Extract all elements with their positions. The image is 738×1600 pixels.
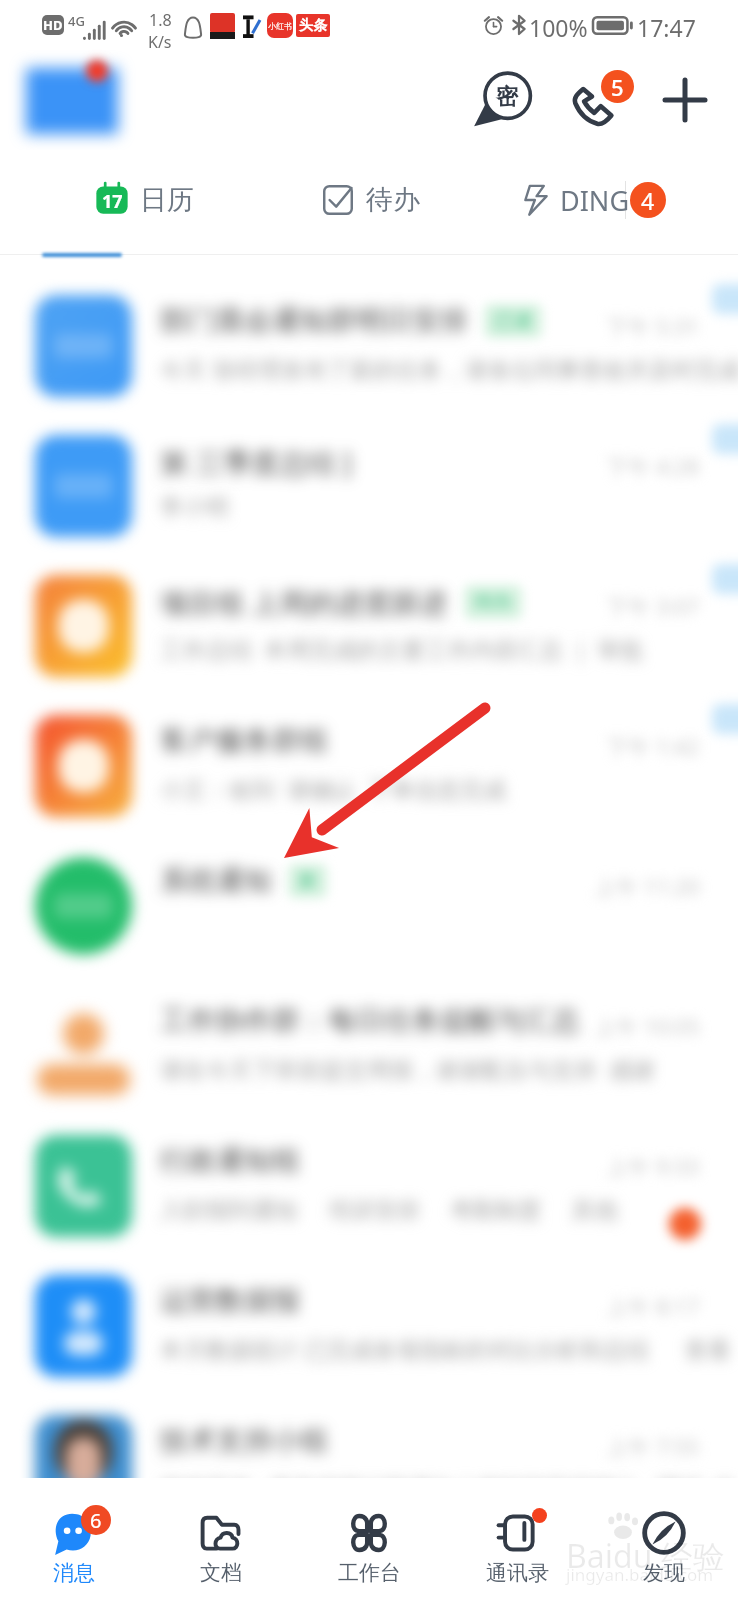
staticText: 下午 5:31	[606, 311, 700, 341]
staticText: jingyan.baidu.com	[566, 1563, 714, 1586]
staticText: 待办	[474, 590, 512, 614]
button[interactable]: Secret chat	[473, 67, 537, 131]
button[interactable]: 系统通知	[0, 836, 738, 976]
staticText: 下午 4:28	[606, 451, 700, 481]
staticText: 系统通知	[160, 863, 272, 898]
button[interactable]: 工作台	[296, 1478, 442, 1600]
staticText: 消息	[53, 1560, 95, 1586]
staticText: 今天 张经理发布了新的任务，请各位同事查收并及时完成	[160, 353, 738, 384]
staticText: 上午 8:17	[606, 1291, 700, 1321]
staticText: 日历	[140, 183, 194, 217]
staticText: Baidu 经验	[566, 1534, 725, 1578]
staticText: 工作协作群：每日任务提醒与汇总	[160, 1003, 580, 1038]
staticText: 通讯录	[486, 1560, 549, 1586]
staticText: 上午 10:05	[594, 1011, 700, 1041]
button[interactable]: Profile	[20, 58, 124, 142]
staticText: 17:47	[637, 12, 696, 43]
button[interactable]: 发现	[591, 1478, 737, 1600]
staticText: 下午 3:07	[606, 591, 700, 621]
button[interactable]: 技术支持小组	[0, 1396, 738, 1536]
staticText: 发现	[643, 1560, 685, 1586]
staticText: 李小明	[160, 493, 229, 522]
button[interactable]: 部门晨会通知群明日安排	[0, 276, 738, 416]
staticText: 5	[611, 72, 624, 102]
staticText: 上午 9:33	[606, 1151, 700, 1181]
staticText: 项目组 上周的进度跟进	[160, 583, 448, 621]
button[interactable]: 第 三季度总结 ]	[0, 416, 738, 556]
staticText: 1.8	[149, 9, 172, 31]
staticText: 已读	[494, 309, 532, 333]
staticText: 请在今天下班前提交周报，谢谢配合与支持 感谢	[160, 1053, 655, 1084]
button[interactable]: DING	[500, 150, 738, 250]
button[interactable]: Calls	[566, 68, 642, 132]
staticText: 新	[298, 869, 317, 893]
button[interactable]: 17	[40, 150, 256, 250]
staticText: DING	[560, 182, 630, 219]
staticText: 4	[641, 185, 655, 216]
staticText: 工作总结 本周完成的主要工作内容汇总 ｜ 审批	[160, 633, 644, 664]
staticText: 行政通知组	[160, 1143, 300, 1178]
staticText: 客户服务群组	[160, 723, 328, 758]
staticText: 密	[496, 83, 518, 111]
staticText: 入职报到通知 培训安排 考勤制度 其他	[160, 1193, 618, 1224]
staticText: 头条	[299, 17, 327, 35]
staticText: 100%	[529, 12, 588, 43]
staticText: 上午 7:55	[606, 1431, 700, 1461]
button[interactable]: 工作协作群：每日任务提醒与汇总	[0, 976, 738, 1116]
button[interactable]: 行政通知组	[0, 1116, 738, 1256]
button[interactable]: 客户服务群组	[0, 696, 738, 836]
staticText: 技术支持小组	[160, 1423, 328, 1458]
button[interactable]: 文档	[148, 1478, 294, 1600]
button[interactable]: 待办	[290, 150, 480, 250]
staticText: 上午 11:20	[594, 871, 700, 901]
button[interactable]: Add	[655, 70, 715, 130]
button[interactable]: 6	[1, 1478, 147, 1600]
staticText: K/s	[148, 31, 172, 53]
staticText: 工作台	[338, 1560, 401, 1586]
staticText: HD	[43, 16, 63, 34]
button[interactable]: 项目组 上周的进度跟进	[0, 556, 738, 696]
staticText: 17	[102, 189, 123, 214]
staticText: 4G	[68, 12, 85, 30]
button[interactable]: 通讯录	[444, 1478, 590, 1600]
staticText: 第 三季度总结 ]	[160, 443, 352, 481]
staticText: 小红书	[268, 21, 292, 31]
staticText: 文档	[200, 1560, 242, 1586]
staticText: 下午 1:42	[606, 731, 700, 761]
staticText: 本月数据统计 已完成各项指标的对比分析和总结 查看	[160, 1333, 731, 1364]
staticText: 运营数据报	[160, 1283, 300, 1318]
staticText: 6	[90, 1507, 102, 1534]
staticText: 小王：收到 请确认 下单信息完成	[160, 773, 506, 804]
staticText: 部门晨会通知群明日安排	[160, 303, 468, 338]
button[interactable]: 运营数据报	[0, 1256, 738, 1396]
staticText: 待办	[366, 183, 420, 217]
